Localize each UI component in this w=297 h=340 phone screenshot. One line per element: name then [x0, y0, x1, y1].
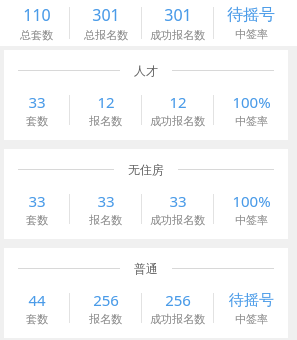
staticText: 44 — [28, 290, 46, 310]
staticText: 成功报名数 — [150, 28, 205, 42]
staticText: 33 — [28, 191, 46, 211]
button[interactable]: 无住房 — [4, 149, 288, 239]
button[interactable]: 301 — [70, 4, 141, 42]
staticText: 中签率 — [235, 312, 268, 326]
staticText: 套数 — [26, 213, 48, 227]
button[interactable]: 33 — [142, 191, 213, 227]
staticText: 256 — [165, 290, 191, 310]
staticText: 成功报名数 — [150, 312, 205, 326]
button[interactable]: 普通 — [4, 248, 288, 338]
staticText: 301 — [92, 4, 120, 26]
staticText: 100% — [232, 92, 271, 112]
staticText: 33 — [169, 191, 187, 211]
button[interactable]: 33 — [4, 191, 69, 227]
button[interactable]: 待摇号 — [214, 5, 288, 41]
button[interactable]: 44 — [4, 290, 69, 326]
staticText: 待摇号 — [229, 291, 274, 310]
button[interactable]: 256 — [142, 290, 213, 326]
staticText: 普通 — [134, 261, 158, 276]
staticText: 无住房 — [128, 162, 164, 177]
staticText: 110 — [23, 4, 51, 26]
staticText: 33 — [97, 191, 115, 211]
button[interactable]: 33 — [4, 92, 69, 128]
staticText: 301 — [164, 4, 192, 26]
staticText: 33 — [28, 92, 46, 112]
staticText: 总套数 — [20, 28, 53, 42]
staticText: 成功报名数 — [150, 114, 205, 128]
staticText: 待摇号 — [227, 5, 275, 25]
button[interactable]: 301 — [142, 4, 213, 42]
button[interactable]: 12 — [70, 92, 141, 128]
button[interactable]: 人才 — [4, 50, 288, 140]
staticText: 中签率 — [235, 213, 268, 227]
staticText: 报名数 — [89, 213, 122, 227]
staticText: 报名数 — [89, 312, 122, 326]
staticText: 256 — [93, 290, 119, 310]
staticText: 总报名数 — [84, 28, 128, 42]
staticText: 12 — [97, 92, 115, 112]
button[interactable]: 33 — [70, 191, 141, 227]
staticText: 中签率 — [235, 114, 268, 128]
staticText: 12 — [169, 92, 187, 112]
button[interactable]: 12 — [142, 92, 213, 128]
staticText: 人才 — [134, 63, 158, 78]
staticText: 套数 — [26, 114, 48, 128]
button[interactable]: 256 — [70, 290, 141, 326]
staticText: 报名数 — [89, 114, 122, 128]
staticText: 100% — [232, 191, 271, 211]
button[interactable]: 100% — [214, 191, 288, 227]
button[interactable]: 100% — [214, 92, 288, 128]
staticText: 成功报名数 — [150, 213, 205, 227]
staticText: 套数 — [26, 312, 48, 326]
staticText: 中签率 — [235, 27, 268, 41]
button[interactable]: 110 — [4, 4, 69, 42]
button[interactable]: 待摇号 — [214, 291, 288, 326]
